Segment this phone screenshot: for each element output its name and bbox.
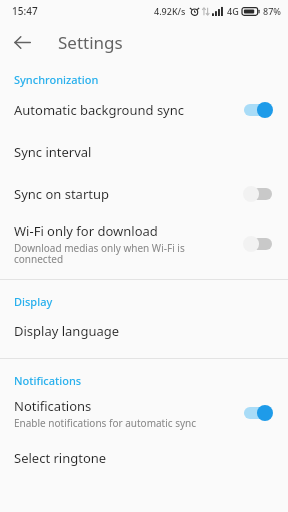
button[interactable]: Switch on	[240, 98, 276, 122]
button[interactable]: Switch off	[240, 182, 276, 206]
staticText: 4G	[227, 5, 239, 17]
staticText: Synchronization	[14, 72, 99, 87]
staticText: Enable notifications for automatic sync	[14, 416, 197, 430]
staticText: 15:47	[12, 4, 38, 18]
button[interactable]: Notifications	[0, 390, 288, 436]
staticText: Settings	[58, 31, 123, 54]
staticText: 4.92K/s	[154, 5, 186, 17]
staticText: Sync on startup	[14, 185, 110, 203]
staticText: Download medias only when Wi-Fi is conne…	[14, 241, 230, 266]
staticText: Display language	[14, 322, 120, 340]
button[interactable]: Switch on	[240, 401, 276, 425]
staticText: Notifications	[14, 397, 92, 415]
staticText: Select ringtone	[14, 449, 107, 467]
staticText: Notifications	[14, 373, 82, 388]
button[interactable]: Display language	[0, 311, 288, 351]
button[interactable]: Sync interval	[0, 131, 288, 173]
staticText: 87%	[263, 5, 281, 17]
button[interactable]: Switch off	[240, 232, 276, 256]
button[interactable]: Select ringtone	[0, 436, 288, 480]
button[interactable]: Sync on startup	[0, 173, 288, 215]
button[interactable]: Automatic background sync	[0, 89, 288, 131]
staticText: Wi-Fi only for download	[14, 222, 158, 240]
staticText: Display	[14, 294, 53, 309]
button[interactable]: Wi-Fi only for download	[0, 215, 288, 273]
button[interactable]: Back	[6, 26, 38, 58]
staticText: Automatic background sync	[14, 101, 185, 119]
staticText: Sync interval	[14, 143, 92, 161]
